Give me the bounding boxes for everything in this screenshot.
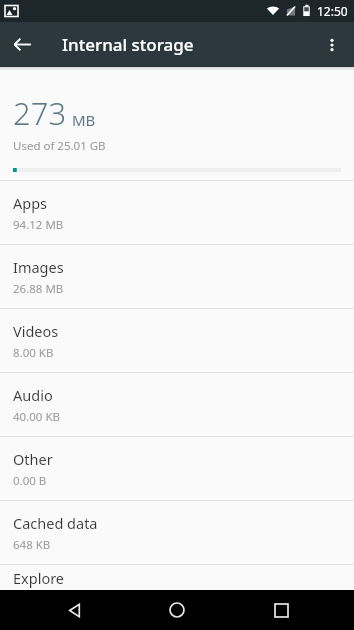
button[interactable]: Recents [251, 590, 311, 630]
staticText: 12:50 [317, 3, 348, 19]
button[interactable]: Videos [0, 309, 354, 372]
staticText: 26.88 MB [13, 281, 64, 297]
staticText: 273 [13, 92, 67, 134]
staticText: Internal storage [62, 33, 194, 56]
staticText: Other [13, 449, 53, 469]
staticText: Audio [13, 385, 53, 405]
staticText: Explore [13, 568, 65, 588]
staticText: Videos [13, 321, 59, 341]
button[interactable]: Back [44, 590, 104, 630]
button[interactable]: Back [0, 22, 45, 67]
staticText: 648 KB [13, 537, 51, 553]
button[interactable]: More options [309, 22, 354, 67]
staticText: 0.00 B [13, 473, 47, 489]
button[interactable]: Images [0, 245, 354, 308]
staticText: 94.12 MB [13, 217, 64, 233]
staticText: MB [72, 110, 96, 130]
staticText: Apps [13, 193, 48, 213]
button[interactable]: Home [147, 590, 207, 630]
button[interactable]: Audio [0, 373, 354, 436]
staticText: Used of 25.01 GB [13, 138, 106, 154]
button[interactable]: Cached data [0, 501, 354, 564]
button[interactable]: Apps [0, 181, 354, 244]
staticText: Cached data [13, 513, 98, 533]
staticText: Images [13, 257, 64, 277]
button[interactable]: Explore [0, 565, 354, 590]
staticText: 8.00 KB [13, 345, 54, 361]
button[interactable]: Other [0, 437, 354, 500]
staticText: 40.00 KB [13, 409, 60, 425]
